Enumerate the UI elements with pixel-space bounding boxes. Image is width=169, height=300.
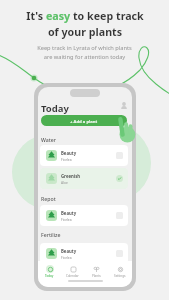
button[interactable]: Calendar xyxy=(61,265,84,278)
staticText: Ficelea xyxy=(61,157,72,161)
other: Tap xyxy=(116,115,138,143)
staticText: Greenish xyxy=(61,173,81,179)
button[interactable]: Profile xyxy=(119,101,129,111)
button[interactable]: Today xyxy=(38,265,61,278)
button[interactable]: Greenish xyxy=(40,168,128,189)
staticText: Water xyxy=(41,136,56,143)
button[interactable]: Beauty xyxy=(40,145,128,166)
staticText: Beauty xyxy=(61,150,77,156)
button[interactable]: Beauty xyxy=(40,205,128,226)
staticText: + Add a plant xyxy=(70,118,98,124)
staticText: Fertilize xyxy=(41,231,61,238)
staticText: Today xyxy=(41,102,69,115)
button[interactable]: Beauty xyxy=(40,243,128,264)
staticText: It's easy to keep track of your plants xyxy=(26,9,144,39)
staticText: Aloe xyxy=(61,180,68,184)
staticText: Beauty xyxy=(61,248,77,254)
staticText: Calendar xyxy=(66,274,79,278)
staticText: Today xyxy=(45,274,54,278)
staticText: Plants xyxy=(92,274,101,278)
button[interactable]: Settings xyxy=(108,265,132,278)
staticText: Ficelea xyxy=(61,217,72,221)
button[interactable]: + Add a plant xyxy=(41,115,127,126)
staticText: Keep track in Lyrata of which plants are… xyxy=(37,44,132,60)
staticText: Repot xyxy=(41,195,56,202)
staticText: Ficelea xyxy=(61,255,72,259)
staticText: Beauty xyxy=(61,210,77,216)
staticText: Settings xyxy=(114,274,126,278)
button[interactable]: Plants xyxy=(84,265,108,278)
